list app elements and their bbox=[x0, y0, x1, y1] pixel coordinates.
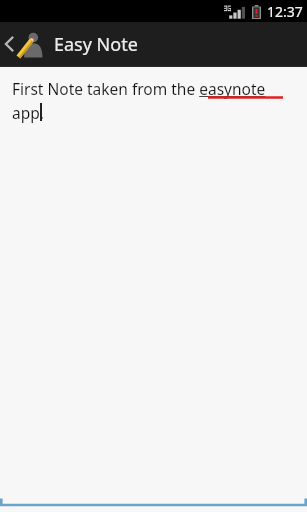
button[interactable]: Navigate up bbox=[0, 22, 47, 66]
button[interactable]: First Note taken from the easynote app. bbox=[0, 67, 307, 512]
staticText: 12:37 bbox=[267, 2, 303, 21]
staticText: Easy Note bbox=[54, 32, 138, 57]
staticText: First Note taken from the easynote app. bbox=[12, 78, 297, 123]
